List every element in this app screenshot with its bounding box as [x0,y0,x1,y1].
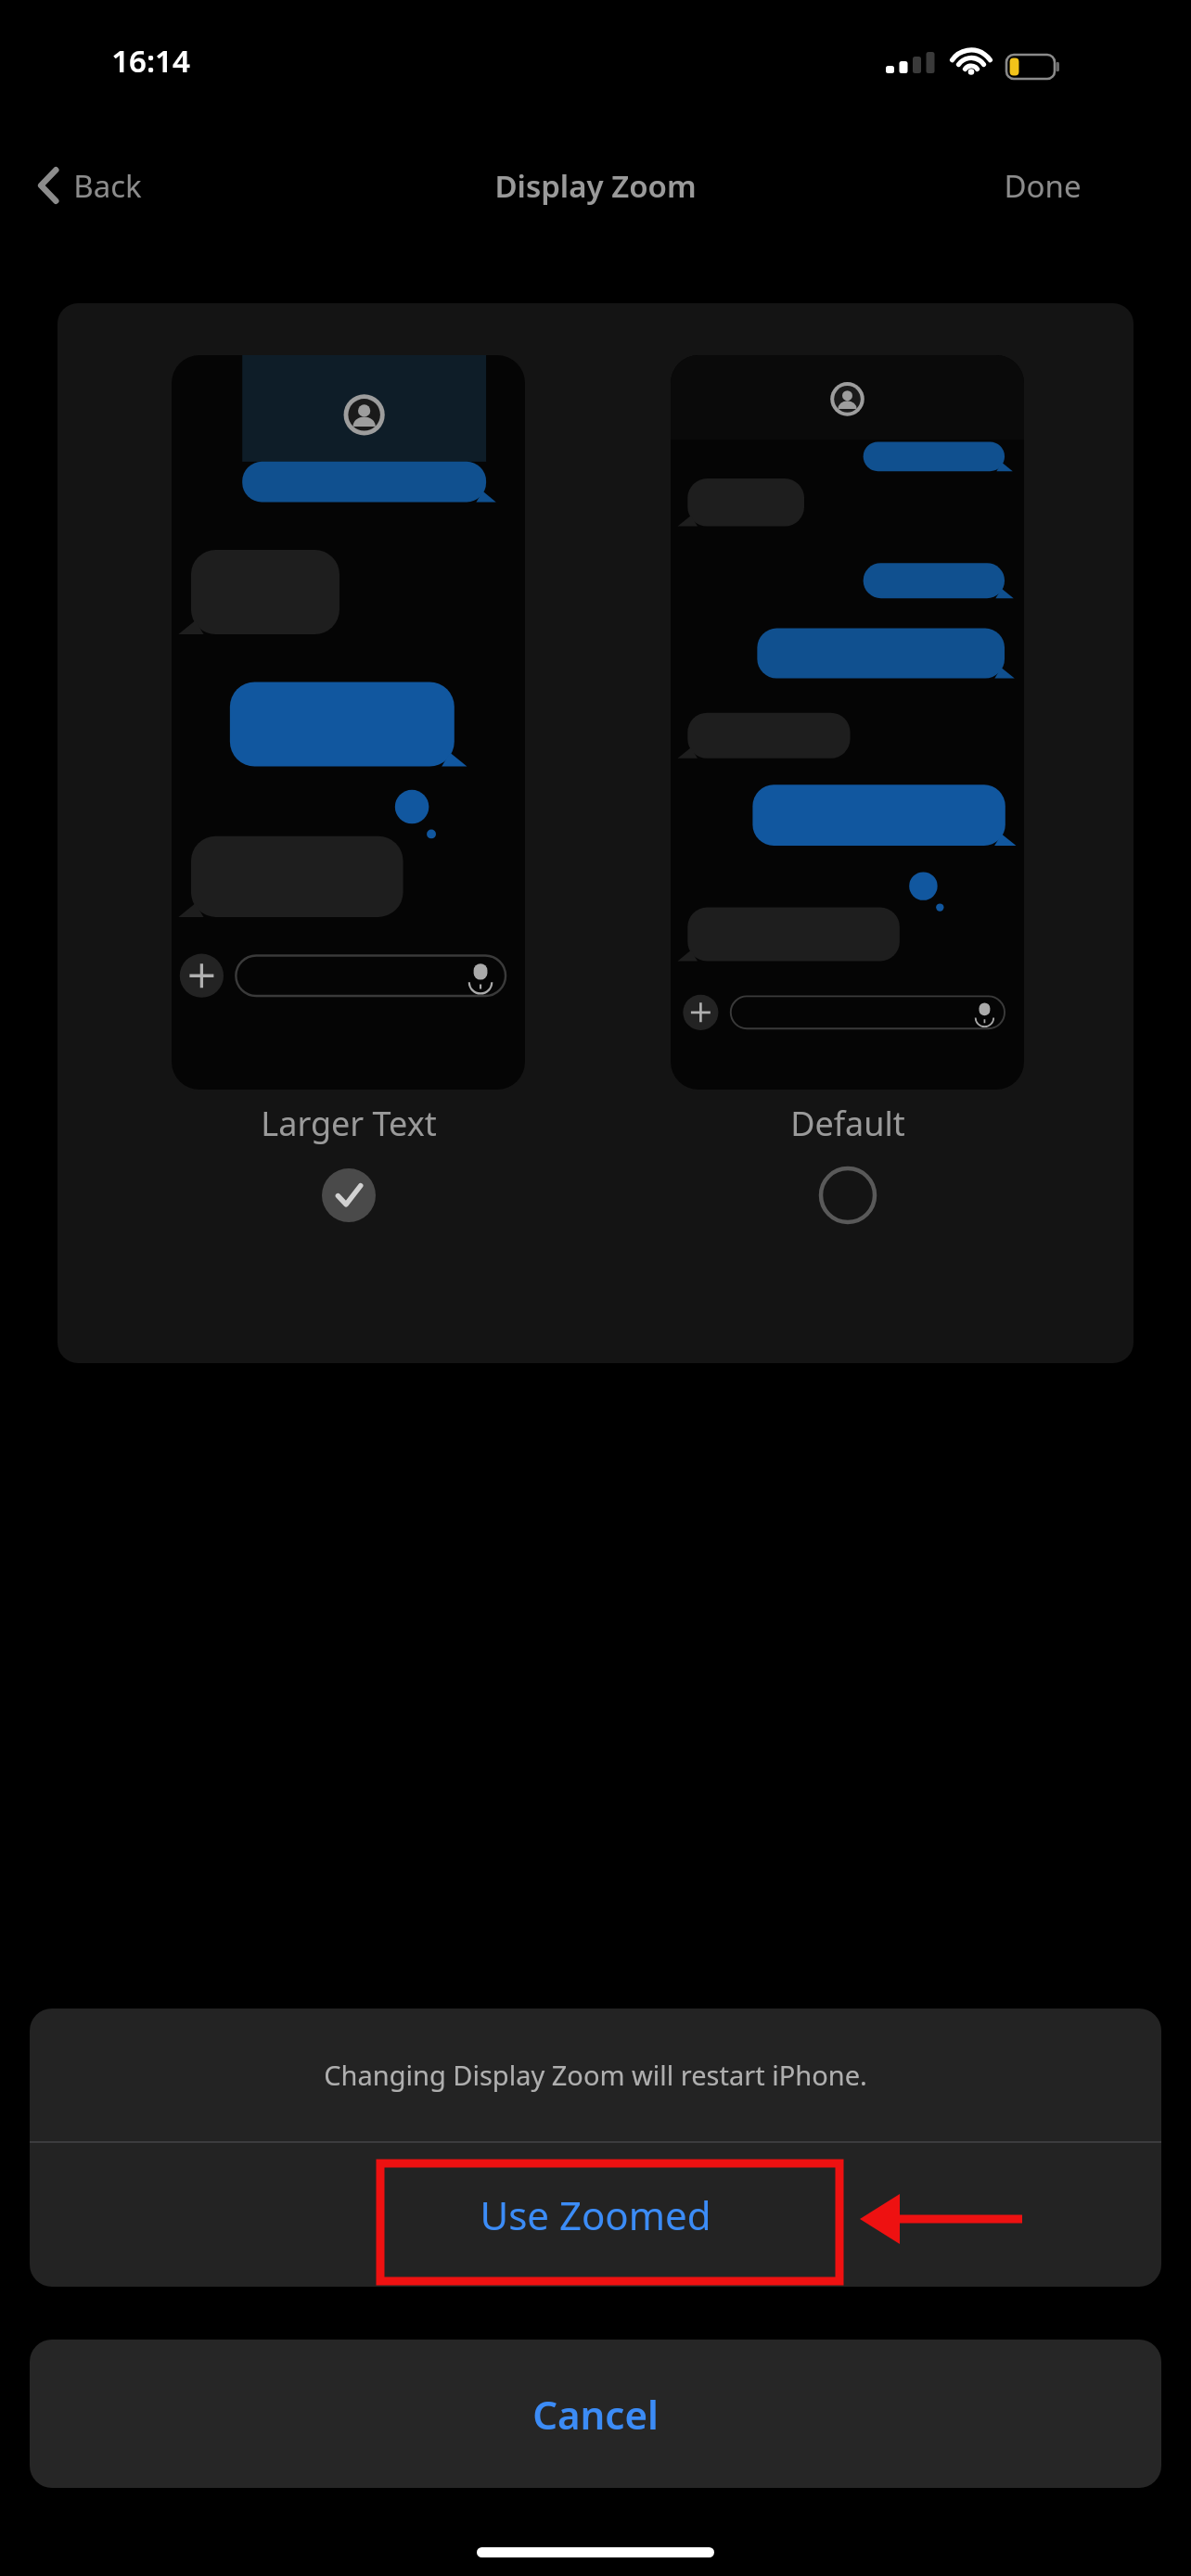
button[interactable]: Cancel [30,2340,1161,2488]
button[interactable] [172,355,525,1090]
staticText: Use Zoomed [480,2188,711,2241]
button[interactable]: Done [989,150,1096,221]
button[interactable]: Back [24,150,155,221]
button[interactable]: Use Zoomed [30,2142,1161,2287]
staticText: Back [73,165,142,207]
staticText: Done [1004,165,1082,207]
staticText: Display Zoom [494,165,697,207]
button[interactable]: Larger Text [172,1101,525,1224]
staticText: Larger Text [261,1101,437,1146]
staticText: Default [790,1101,905,1146]
staticText: 16:14 [111,40,190,82]
staticText: Changing Display Zoom will restart iPhon… [324,2057,867,2093]
staticText: Cancel [532,2388,659,2441]
button[interactable]: Default [671,1101,1024,1224]
button[interactable] [671,355,1024,1090]
